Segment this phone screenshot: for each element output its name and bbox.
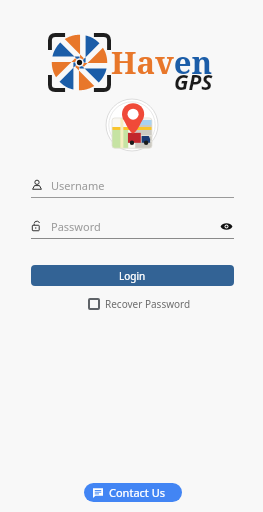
button[interactable]: Recover Password [88, 297, 191, 311]
staticText: Password [51, 219, 101, 234]
staticText: Username [51, 178, 105, 193]
staticText: GPS [174, 68, 213, 97]
button[interactable]: Login [31, 265, 234, 286]
staticText: Recover Password [105, 297, 191, 311]
staticText: Contact Us [109, 485, 165, 500]
button[interactable]: Show password [218, 218, 234, 234]
staticText: Login [119, 269, 146, 283]
button[interactable]: Contact Us [84, 483, 182, 502]
staticText: Haven [111, 41, 213, 83]
